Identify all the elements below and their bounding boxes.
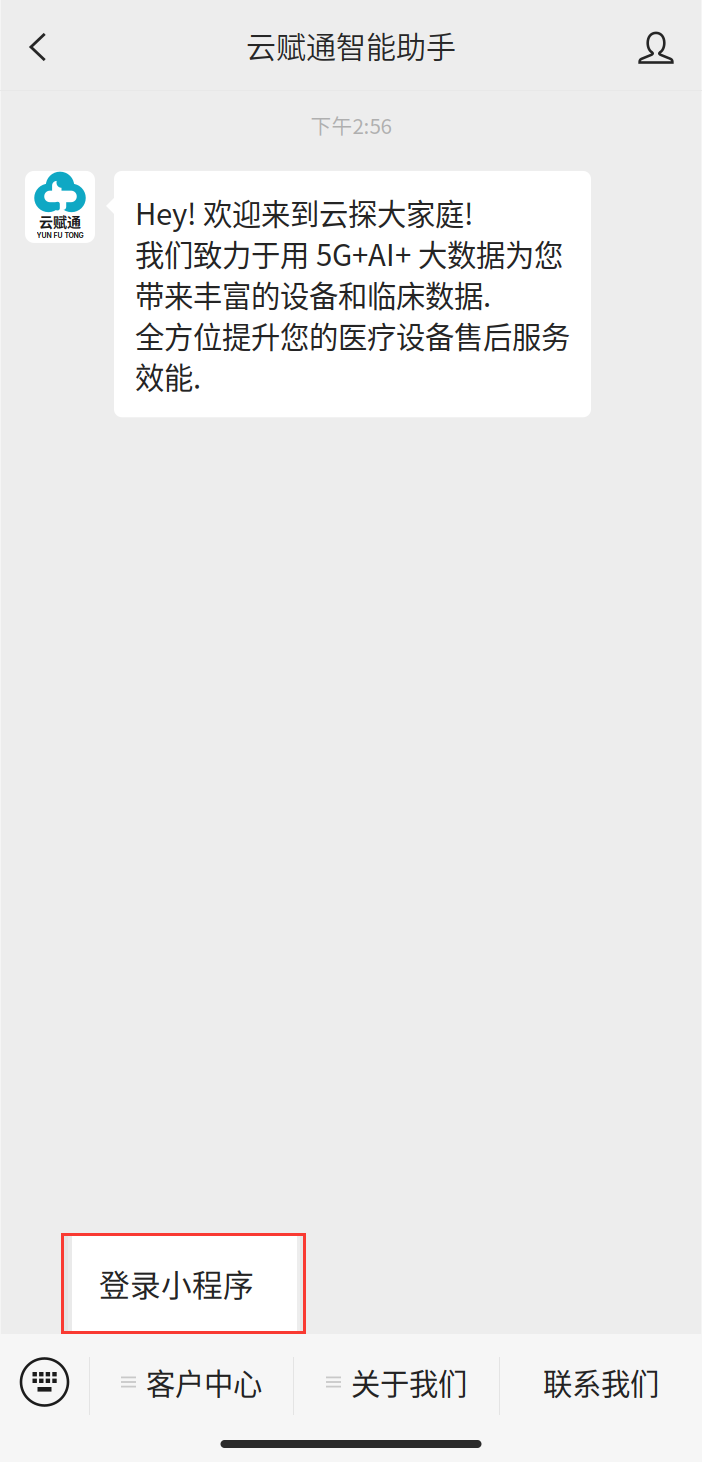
button[interactable]: Keyboard [0, 1334, 89, 1430]
staticText: 下午2:56 [310, 110, 391, 140]
staticText: 带来丰富的设备和临床数据. [135, 273, 491, 315]
staticText: 我们致力于用 5G+AI+ 大数据为您 [135, 232, 563, 274]
button[interactable]: 关于我们 [294, 1334, 499, 1430]
staticText: 云赋通 [39, 211, 81, 231]
button[interactable]: Contact info [607, 0, 702, 90]
staticText: 关于我们 [351, 1361, 467, 1403]
staticText: Hey! 欢迎来到云探大家庭! [135, 191, 473, 233]
staticText: 效能. [135, 355, 201, 397]
staticText: 登录小程序 [99, 1261, 254, 1306]
staticText: 云赋通智能助手 [246, 23, 456, 67]
button[interactable]: 客户中心 [90, 1334, 293, 1430]
staticText: YUN FU TONG [36, 231, 83, 240]
staticText: 客户中心 [146, 1361, 262, 1403]
staticText: 全方位提升您的医疗设备售后服务 [135, 314, 570, 356]
staticText: 联系我们 [543, 1361, 659, 1403]
button[interactable]: 联系我们 [500, 1334, 702, 1430]
button[interactable]: Back [0, 0, 76, 90]
button[interactable]: 登录小程序 [61, 1233, 306, 1334]
